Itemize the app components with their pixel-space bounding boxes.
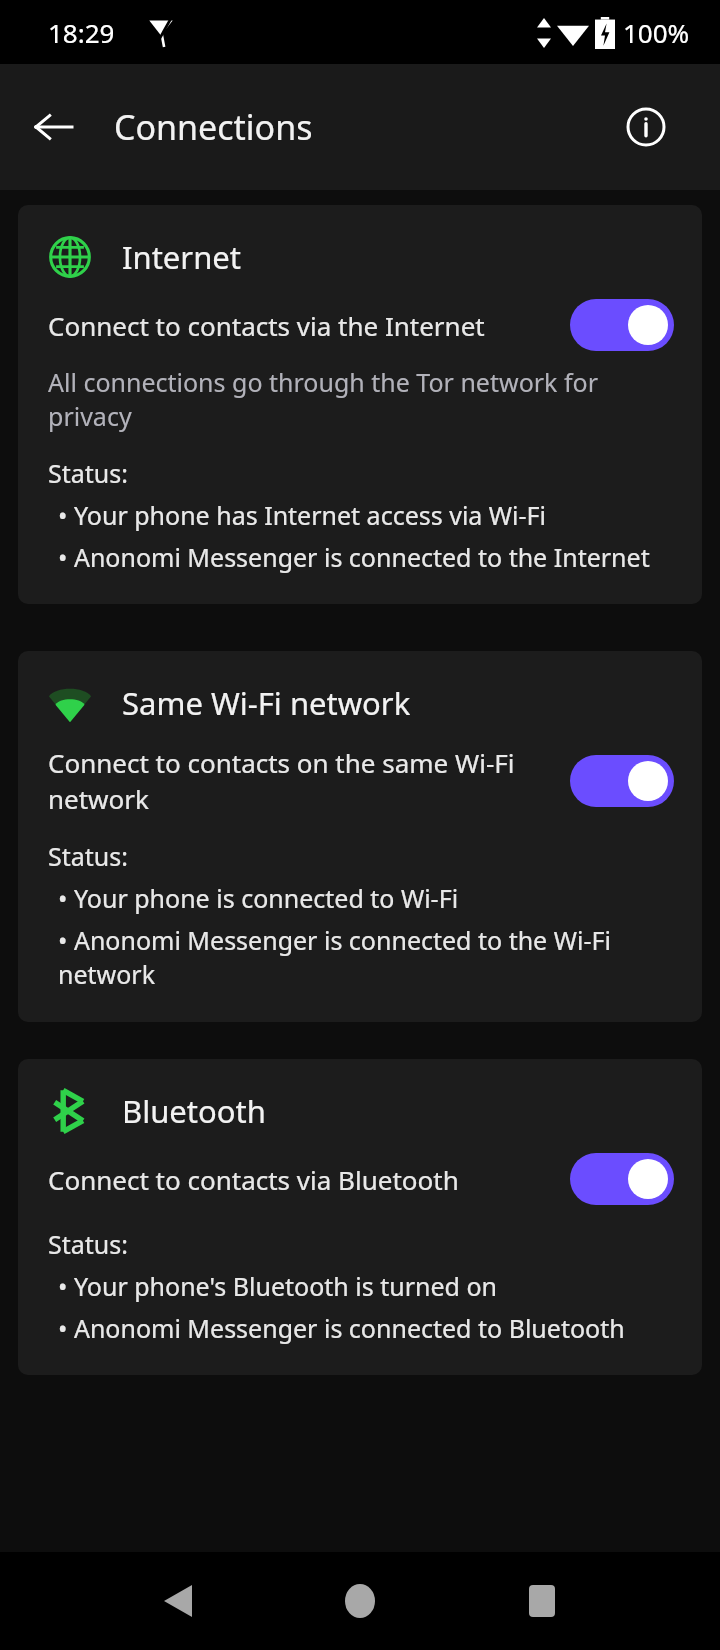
staticText: • Your phone has Internet access via Wi-… [58, 498, 547, 532]
button[interactable]: Same Wi-Fi network [18, 651, 702, 1022]
staticText: • Your phone is connected to Wi-Fi [58, 881, 459, 915]
staticText: All connections go through the Tor netwo… [48, 365, 602, 434]
button[interactable]: Bluetooth [18, 1059, 702, 1375]
staticText: • Your phone's Bluetooth is turned on [58, 1269, 498, 1303]
staticText: Bluetooth [122, 1090, 266, 1132]
staticText: Connections [114, 104, 313, 150]
staticText: Connect to contacts via the Internet [48, 308, 530, 343]
button[interactable]: Connect to contacts on the same Wi-Fi ne… [570, 755, 674, 807]
staticText: • Anonomi Messenger is connected to the … [58, 923, 666, 992]
button[interactable]: Information [620, 101, 672, 153]
button[interactable]: Back [22, 95, 86, 159]
staticText: Connect to contacts via Bluetooth [48, 1162, 530, 1197]
button[interactable]: Connect to contacts via the Internet tog… [570, 299, 674, 351]
button[interactable]: Back [140, 1563, 216, 1639]
staticText: • Anonomi Messenger is connected to the … [58, 540, 650, 574]
staticText: Same Wi-Fi network [122, 682, 411, 724]
staticText: Connect to contacts on the same Wi-Fi ne… [48, 745, 530, 817]
button[interactable]: Recent apps [504, 1563, 580, 1639]
staticText: 18:29 [48, 15, 115, 50]
staticText: Status: [48, 839, 128, 873]
button[interactable]: Internet [18, 205, 702, 604]
button[interactable]: Connect to contacts via Bluetooth toggle [570, 1153, 674, 1205]
staticText: Internet [122, 236, 241, 278]
button[interactable]: Home [322, 1563, 398, 1639]
staticText: 100% [623, 15, 690, 50]
staticText: • Anonomi Messenger is connected to Blue… [58, 1311, 625, 1345]
staticText: Status: [48, 1227, 128, 1261]
staticText: Status: [48, 456, 128, 490]
